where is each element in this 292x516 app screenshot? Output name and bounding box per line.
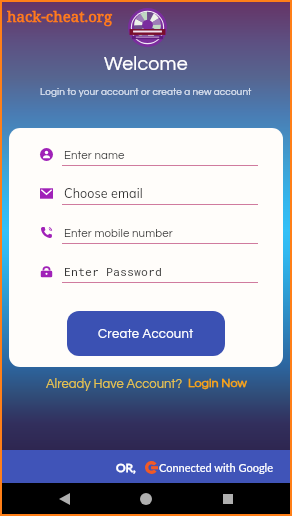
staticText: hack-cheat.org bbox=[7, 6, 112, 26]
staticText: OR, bbox=[116, 460, 136, 474]
button[interactable]: Enter name bbox=[9, 128, 283, 166]
button[interactable]: Home bbox=[135, 488, 157, 510]
staticText: Already Have Account? bbox=[46, 377, 183, 390]
staticText: Connected with Google bbox=[159, 461, 274, 474]
staticText: Enter mobile number bbox=[64, 228, 173, 240]
button[interactable]: Choose email bbox=[9, 166, 283, 205]
staticText: Enter name bbox=[64, 150, 125, 162]
staticText: Welcome bbox=[104, 54, 188, 74]
button[interactable]: Back bbox=[53, 488, 75, 510]
button[interactable]: Enter mobile number bbox=[9, 205, 283, 244]
staticText: Login Now bbox=[188, 377, 247, 390]
button[interactable]: Enter Password bbox=[9, 244, 283, 283]
button[interactable]: Login Now bbox=[188, 377, 247, 390]
staticText: Enter Password bbox=[64, 264, 163, 279]
staticText: Login to your account or create a new ac… bbox=[40, 87, 252, 97]
staticText: Create Account bbox=[98, 327, 194, 340]
staticText: Choose email bbox=[64, 185, 143, 201]
button[interactable]: Create Account bbox=[67, 311, 225, 356]
button[interactable]: OR, bbox=[2, 450, 290, 483]
button[interactable]: Recent apps bbox=[217, 488, 239, 510]
